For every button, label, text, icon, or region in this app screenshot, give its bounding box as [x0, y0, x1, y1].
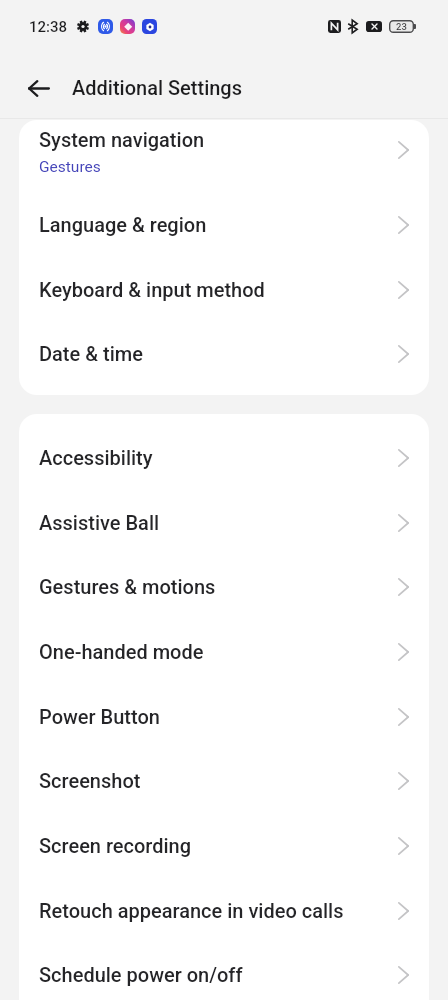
button[interactable]: Power Button [19, 684, 429, 749]
button[interactable]: One-handed mode [19, 619, 429, 684]
button[interactable]: Accessibility [19, 425, 429, 490]
staticText: Assistive Ball [39, 511, 398, 534]
button[interactable]: Schedule power on/off [19, 942, 429, 1000]
staticText: Accessibility [39, 446, 398, 469]
staticText: Gestures & motions [39, 575, 398, 598]
button[interactable]: Date & time [19, 321, 429, 386]
staticText: One-handed mode [39, 640, 398, 663]
staticText: Schedule power on/off [39, 963, 398, 986]
button[interactable]: Language & region [19, 192, 429, 257]
staticText: 12:38 [29, 18, 68, 36]
staticText: Language & region [39, 213, 398, 236]
staticText: Screen recording [39, 834, 398, 857]
staticText: System navigation [39, 128, 205, 151]
staticText: 23 [396, 21, 407, 32]
button[interactable]: Assistive Ball [19, 490, 429, 555]
button[interactable]: Screenshot [19, 748, 429, 813]
staticText: Retouch appearance in video calls [39, 899, 398, 922]
staticText: Power Button [39, 705, 398, 728]
staticText: Keyboard & input method [39, 278, 398, 301]
button[interactable]: Keyboard & input method [19, 257, 429, 322]
button[interactable]: Gestures & motions [19, 554, 429, 619]
staticText: Additional Settings [72, 76, 242, 99]
button[interactable]: Back [26, 75, 52, 101]
staticText: Gestures [39, 158, 101, 176]
staticText: Date & time [39, 342, 398, 365]
button[interactable]: System navigation [19, 120, 429, 192]
button[interactable]: Retouch appearance in video calls [19, 878, 429, 943]
button[interactable]: Screen recording [19, 813, 429, 878]
staticText: Screenshot [39, 769, 398, 792]
